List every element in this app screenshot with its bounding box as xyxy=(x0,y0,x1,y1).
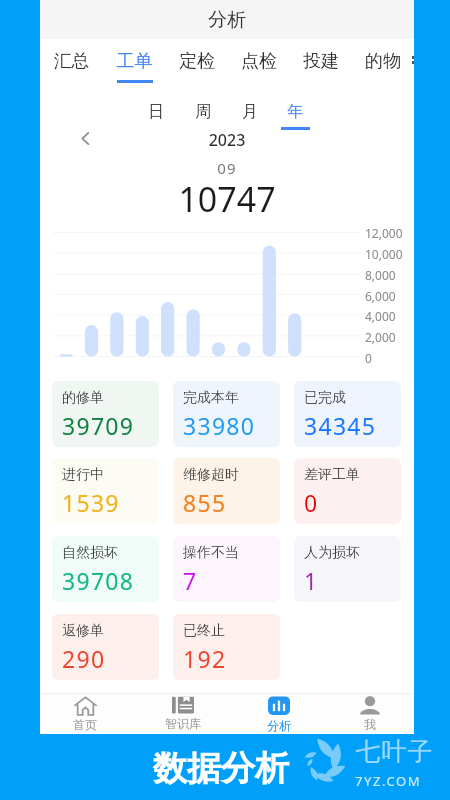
staticText: 10,000 xyxy=(365,246,403,262)
staticText: 月 xyxy=(228,102,272,122)
staticText: 4,000 xyxy=(365,308,396,324)
staticText: 已完成 xyxy=(304,389,346,407)
staticText: 点检 xyxy=(228,50,290,73)
staticText: 2023 xyxy=(40,129,414,151)
staticText: 进行中 xyxy=(62,466,104,484)
button[interactable]: 我 xyxy=(338,693,402,734)
staticText: 6,000 xyxy=(365,288,396,304)
staticText: 完成本年 xyxy=(183,389,239,407)
button[interactable]: 操作不当 xyxy=(173,536,280,602)
staticText: 已终止 xyxy=(183,622,225,640)
button[interactable]: 点检 xyxy=(228,39,290,88)
staticText: 定检 xyxy=(166,50,228,73)
staticText: 39708 xyxy=(62,565,135,596)
staticText: 分析 xyxy=(267,718,291,733)
staticText: 投建 xyxy=(290,50,352,73)
staticText: 0 xyxy=(365,350,372,366)
button[interactable]: 智识库 xyxy=(151,693,215,734)
staticText: 290 xyxy=(62,643,106,674)
button[interactable]: 差评工单 xyxy=(294,458,401,524)
button[interactable]: 的修单 xyxy=(52,381,159,447)
staticText: 七叶子 xyxy=(355,736,433,767)
staticText: 的物 xyxy=(352,50,414,73)
staticText: 7 xyxy=(183,565,198,596)
staticText: 数据分析 xyxy=(153,747,289,790)
button[interactable]: 汇总 xyxy=(40,39,103,88)
staticText: 操作不当 xyxy=(183,544,239,562)
staticText: 的修单 xyxy=(62,389,104,407)
staticText: 周 xyxy=(181,102,225,122)
staticText: 智识库 xyxy=(165,716,201,731)
staticText: 33980 xyxy=(183,410,256,441)
button[interactable]: 定检 xyxy=(166,39,228,88)
staticText: 首页 xyxy=(73,717,97,732)
staticText: 返修单 xyxy=(62,622,104,640)
button[interactable]: Previous period xyxy=(71,124,99,152)
staticText: 192 xyxy=(183,643,227,674)
button[interactable]: 周 xyxy=(181,101,225,129)
staticText: 自然损坏 xyxy=(62,544,118,562)
staticText: 差评工单 xyxy=(304,466,360,484)
staticText: 0 xyxy=(304,487,319,518)
button[interactable]: 进行中 xyxy=(52,458,159,524)
staticText: 汇总 xyxy=(40,50,103,73)
button[interactable]: 分析 xyxy=(247,693,311,734)
button[interactable]: 工单 xyxy=(103,39,166,88)
button[interactable]: 完成本年 xyxy=(173,381,280,447)
staticText: 7YZ.COM xyxy=(355,772,422,790)
staticText: 09 xyxy=(40,158,414,178)
button[interactable]: 人为损坏 xyxy=(294,536,401,602)
staticText: 12,000 xyxy=(365,225,403,241)
button[interactable]: 返修单 xyxy=(52,614,159,680)
staticText: 39709 xyxy=(62,410,135,441)
staticText: 855 xyxy=(183,487,227,518)
staticText: 1539 xyxy=(62,487,120,518)
button[interactable]: 年 xyxy=(273,101,317,129)
button[interactable]: 已终止 xyxy=(173,614,280,680)
staticText: 我 xyxy=(364,717,376,732)
button[interactable]: 的物 xyxy=(352,39,414,88)
staticText: 10747 xyxy=(40,176,414,222)
staticText: 1 xyxy=(304,565,319,596)
staticText: 维修超时 xyxy=(183,466,239,484)
button[interactable]: 月 xyxy=(228,101,272,129)
button[interactable]: 日 xyxy=(134,101,178,129)
staticText: 8,000 xyxy=(365,267,396,283)
staticText: 34345 xyxy=(304,410,377,441)
button[interactable]: 首页 xyxy=(53,693,117,734)
staticText: 年 xyxy=(273,102,317,122)
button[interactable]: 自然损坏 xyxy=(52,536,159,602)
button[interactable]: 已完成 xyxy=(294,381,401,447)
button[interactable]: 投建 xyxy=(290,39,352,88)
staticText: 日 xyxy=(134,102,178,122)
button[interactable]: 维修超时 xyxy=(173,458,280,524)
staticText: 人为损坏 xyxy=(304,544,360,562)
staticText: 2,000 xyxy=(365,329,396,345)
staticText: 工单 xyxy=(103,50,166,73)
staticText: 分析 xyxy=(208,8,246,32)
